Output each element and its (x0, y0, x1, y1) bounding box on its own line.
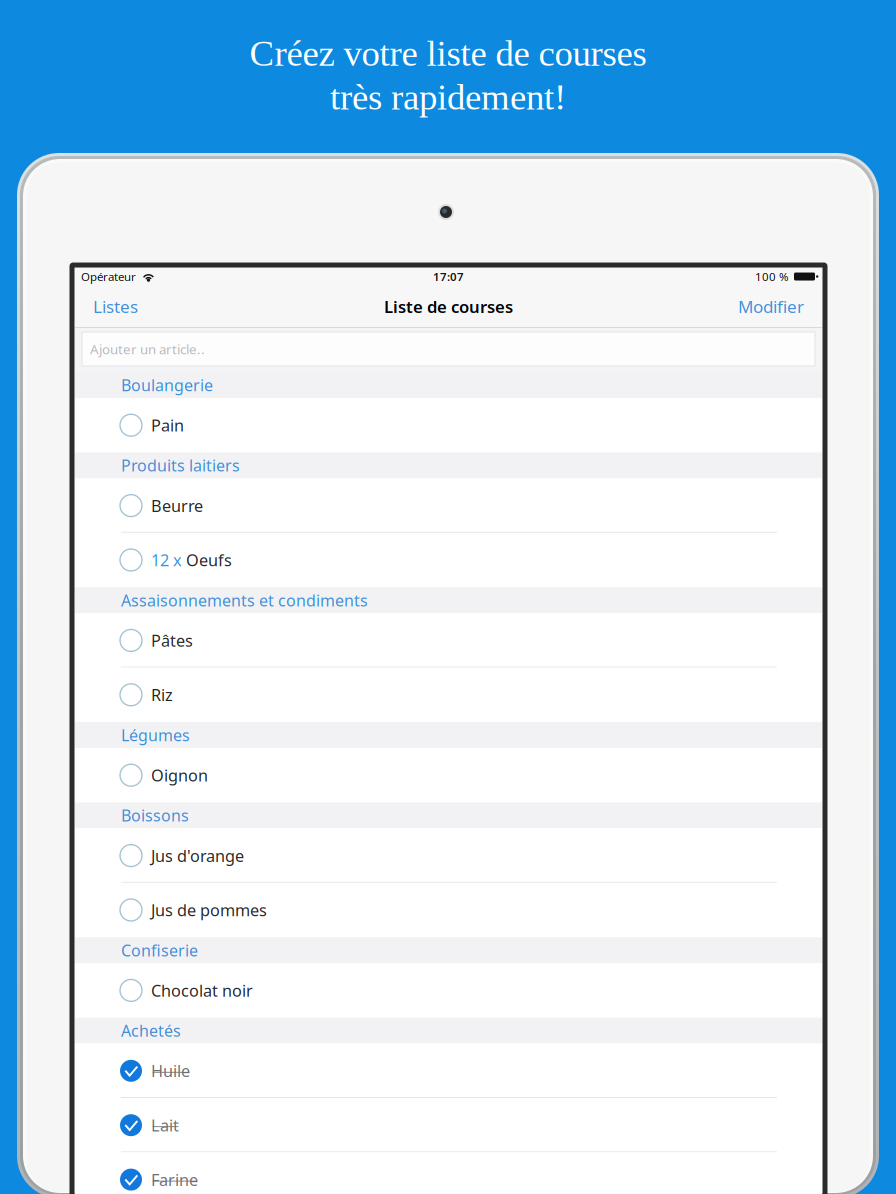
button[interactable]: Riz (75, 668, 822, 722)
button[interactable]: Farine (75, 1152, 822, 1194)
button[interactable]: Chocolat noir (75, 963, 822, 1018)
staticText: Oeufs (182, 549, 232, 571)
staticText: très rapidement! (330, 77, 566, 118)
staticText: Oignon (151, 764, 208, 786)
staticText: Boissons (121, 804, 189, 826)
button[interactable]: Ajouter un article.. (75, 328, 822, 372)
staticText: Pain (151, 414, 184, 436)
staticText: Créez votre liste de courses (249, 33, 646, 74)
staticText: Opérateur (81, 269, 136, 284)
button[interactable]: Listes (85, 285, 146, 328)
button[interactable]: Modifier (730, 285, 812, 328)
staticText: Riz (151, 684, 173, 706)
staticText: Modifier (738, 295, 804, 318)
staticText: Huile (151, 1060, 190, 1082)
button[interactable]: Beurre (75, 478, 822, 533)
button[interactable]: Huile (75, 1044, 822, 1098)
staticText: Liste de courses (384, 295, 513, 318)
button[interactable]: Pâtes (75, 613, 822, 668)
staticText: Lait (151, 1114, 179, 1136)
staticText: Beurre (151, 494, 203, 517)
staticText: Confiserie (121, 939, 198, 961)
staticText: Jus de pommes (151, 899, 267, 921)
button[interactable]: 12 x (75, 533, 822, 587)
button[interactable]: Jus de pommes (75, 883, 822, 937)
staticText: 17:07 (433, 269, 464, 284)
staticText: Pâtes (151, 629, 193, 651)
button[interactable]: Jus d'orange (75, 828, 822, 883)
staticText: Farine (151, 1168, 198, 1191)
button[interactable]: Lait (75, 1098, 822, 1152)
staticText: Boulangerie (121, 374, 213, 396)
staticText: Assaisonnements et condiments (121, 589, 368, 611)
staticText: Achetés (121, 1020, 181, 1041)
staticText: Chocolat noir (151, 979, 253, 1001)
staticText: Légumes (121, 724, 190, 746)
button[interactable]: Pain (75, 398, 822, 452)
staticText: 100 % (755, 269, 789, 284)
staticText: 12 x (151, 549, 182, 571)
staticText: Listes (93, 295, 138, 318)
staticText: Produits laitiers (121, 454, 240, 476)
button[interactable]: Oignon (75, 748, 822, 802)
staticText: Ajouter un article.. (90, 340, 205, 358)
staticText: Jus d'orange (151, 844, 244, 867)
